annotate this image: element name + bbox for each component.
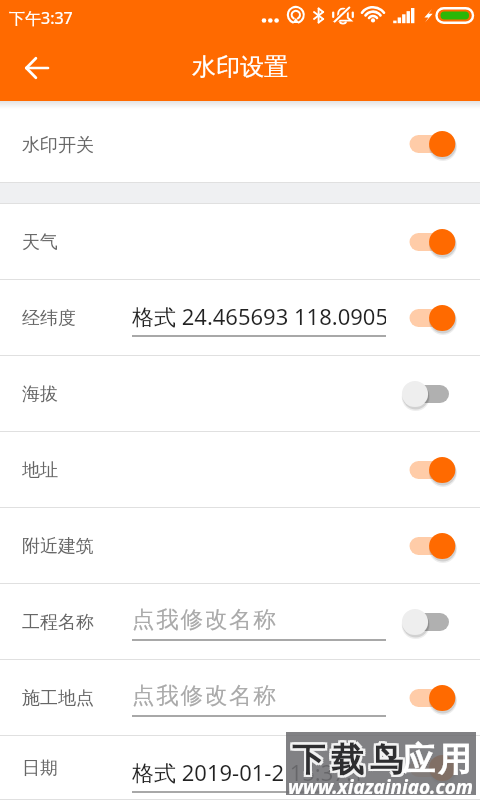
staticText: www.xiazainiao.com: [288, 774, 474, 800]
staticText: 施工地点: [22, 687, 94, 710]
button[interactable]: 点我修改名称: [132, 677, 386, 719]
button[interactable]: 开关 开: [403, 452, 459, 488]
staticText: 下载鸟: [287, 737, 404, 779]
staticText: 下载鸟: [287, 741, 404, 783]
staticText: 下载鸟: [289, 739, 406, 781]
staticText: 下午3:37: [9, 7, 73, 29]
staticText: 格式 24.465693 118.09055: [132, 301, 386, 331]
button[interactable]: 格式 2019-01-2 15:37:1: [132, 753, 386, 795]
staticText: 点我修改名称: [132, 605, 278, 633]
staticText: 格式 2019-01-2 15:37:1: [132, 757, 365, 787]
button[interactable]: 工程名称: [0, 584, 480, 660]
staticText: 水印设置: [192, 52, 288, 82]
button[interactable]: 返回: [9, 40, 65, 96]
button[interactable]: 日期: [0, 736, 480, 800]
button[interactable]: 附近建筑: [0, 508, 480, 584]
staticText: 经纬度: [22, 307, 76, 330]
staticText: 工程名称: [22, 611, 94, 634]
button[interactable]: 开关 开: [403, 528, 459, 564]
button[interactable]: 海拔: [0, 356, 480, 432]
button[interactable]: 天气: [0, 204, 480, 280]
button[interactable]: 开关 开: [403, 300, 459, 336]
staticText: 下载鸟: [291, 741, 408, 783]
staticText: 点我修改名称: [132, 681, 278, 709]
button[interactable]: 开关 开: [403, 126, 459, 162]
staticText: 水印开关: [22, 134, 94, 157]
button[interactable]: 格式 24.465693 118.09055: [132, 297, 386, 339]
staticText: 海拔: [22, 383, 58, 406]
staticText: 下载鸟: [287, 739, 404, 781]
button[interactable]: 施工地点: [0, 660, 480, 736]
button[interactable]: 开关 关: [403, 604, 459, 640]
button[interactable]: 开关 关: [403, 376, 459, 412]
staticText: 下载鸟: [289, 739, 406, 781]
button[interactable]: 开关 开: [403, 750, 459, 786]
button[interactable]: 地址: [0, 432, 480, 508]
staticText: 下载鸟: [289, 741, 406, 783]
button[interactable]: 开关 开: [403, 680, 459, 716]
staticText: 下载鸟: [291, 737, 408, 779]
staticText: 下载鸟: [289, 737, 406, 779]
staticText: 地址: [22, 459, 58, 482]
staticText: 下载鸟: [291, 739, 408, 781]
staticText: 附近建筑: [22, 535, 94, 558]
button[interactable]: 点我修改名称: [132, 601, 386, 643]
button[interactable]: 经纬度: [0, 280, 480, 356]
staticText: 日期: [22, 757, 58, 780]
staticText: 应用: [400, 739, 473, 781]
button[interactable]: 开关 开: [403, 224, 459, 260]
staticText: 天气: [22, 231, 58, 254]
